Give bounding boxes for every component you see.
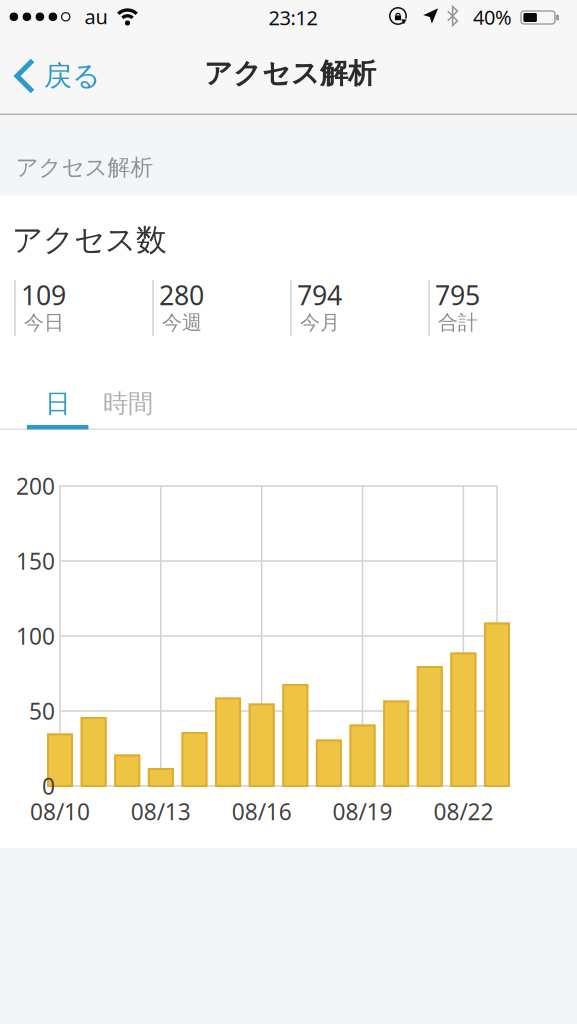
staticText: 109 <box>21 277 66 313</box>
staticText: 日 <box>45 388 70 419</box>
staticText: 40% <box>473 4 512 30</box>
staticText: 23:12 <box>268 4 317 31</box>
staticText: 合計 <box>438 310 478 335</box>
staticText: 今週 <box>162 310 202 335</box>
staticText: 280 <box>159 277 204 313</box>
button[interactable]: 日 <box>27 383 89 423</box>
staticText: au <box>84 3 107 30</box>
staticText: 50 <box>29 696 55 726</box>
staticText: 戻る <box>44 59 101 93</box>
staticText: 08/13 <box>131 796 191 826</box>
staticText: 今月 <box>300 310 340 335</box>
staticText: アクセス解析 <box>15 154 153 181</box>
staticText: 時間 <box>103 388 153 419</box>
staticText: 795 <box>435 277 480 313</box>
staticText: 08/16 <box>232 796 292 826</box>
button[interactable]: 戻る <box>13 58 101 94</box>
staticText: 08/22 <box>433 796 493 826</box>
staticText: 150 <box>16 546 55 576</box>
staticText: アクセス解析 <box>204 56 376 91</box>
staticText: アクセス数 <box>12 221 167 259</box>
staticText: 100 <box>16 621 55 651</box>
staticText: 200 <box>16 471 55 501</box>
staticText: 794 <box>297 277 342 313</box>
button[interactable]: 時間 <box>83 383 173 423</box>
staticText: 今日 <box>24 310 64 335</box>
staticText: 08/19 <box>332 796 392 826</box>
staticText: 08/10 <box>30 796 90 826</box>
staticText: 0 <box>42 771 55 801</box>
